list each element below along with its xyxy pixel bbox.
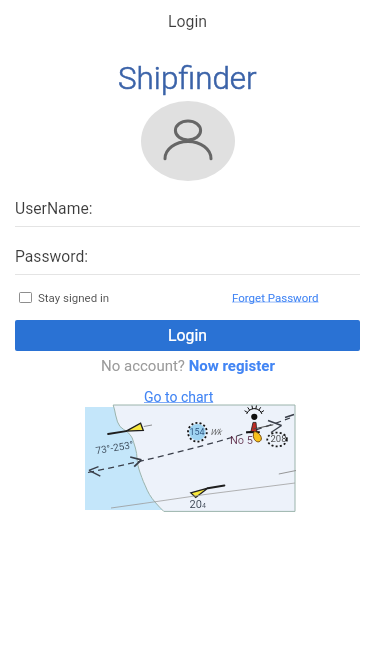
staticText: Forget Password	[232, 291, 319, 304]
button[interactable]: Login	[15, 320, 360, 351]
button[interactable]: No account? Now register	[101, 357, 275, 375]
button[interactable]: Stay signed in	[19, 289, 110, 305]
staticText: No account? Now register	[101, 357, 275, 375]
button[interactable]: Go to chart	[144, 389, 214, 405]
staticText: Shipfinder	[118, 60, 257, 96]
staticText: Password:	[15, 247, 89, 265]
button[interactable]: Nautical chart preview	[85, 407, 295, 510]
staticText: Shipfinder	[118, 60, 257, 96]
staticText: UserName:	[15, 199, 93, 217]
staticText: Login	[168, 326, 207, 345]
staticText: Stay signed in	[38, 291, 110, 304]
staticText: Login	[168, 12, 207, 31]
button[interactable]: Forget Password	[232, 289, 319, 305]
staticText: Go to chart	[144, 389, 214, 405]
